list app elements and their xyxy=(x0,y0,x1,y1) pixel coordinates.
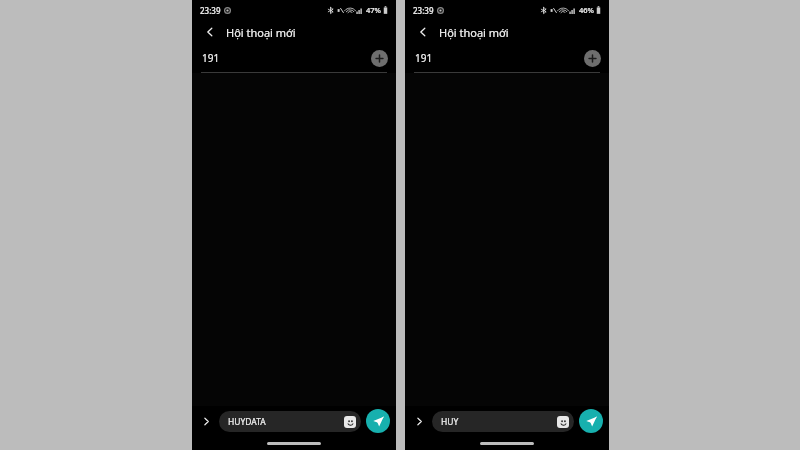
staticText: 191 xyxy=(202,51,220,65)
button[interactable]: More options xyxy=(410,412,428,430)
button[interactable]: More options xyxy=(197,412,215,430)
button[interactable]: Back xyxy=(413,22,433,42)
staticText: HUY xyxy=(441,416,459,428)
staticText: 46% xyxy=(579,5,594,15)
staticText: Hội thoại mới xyxy=(226,25,296,40)
button[interactable]: Stickers xyxy=(557,416,569,428)
staticText: 47% xyxy=(366,5,381,15)
button[interactable]: Send xyxy=(366,409,390,433)
button[interactable]: Add recipient xyxy=(584,50,601,67)
button[interactable]: Send xyxy=(579,409,603,433)
staticText: HUYDATA xyxy=(228,416,266,428)
button[interactable]: Add recipient xyxy=(371,50,388,67)
button[interactable]: Stickers xyxy=(344,416,356,428)
staticText: 23:39 xyxy=(200,5,221,16)
staticText: 191 xyxy=(415,51,433,65)
button[interactable]: Back xyxy=(200,22,220,42)
staticText: 23:39 xyxy=(413,5,434,16)
button[interactable]: HUYDATA xyxy=(219,411,361,432)
staticText: Hội thoại mới xyxy=(439,25,509,40)
button[interactable]: HUY xyxy=(432,411,574,432)
